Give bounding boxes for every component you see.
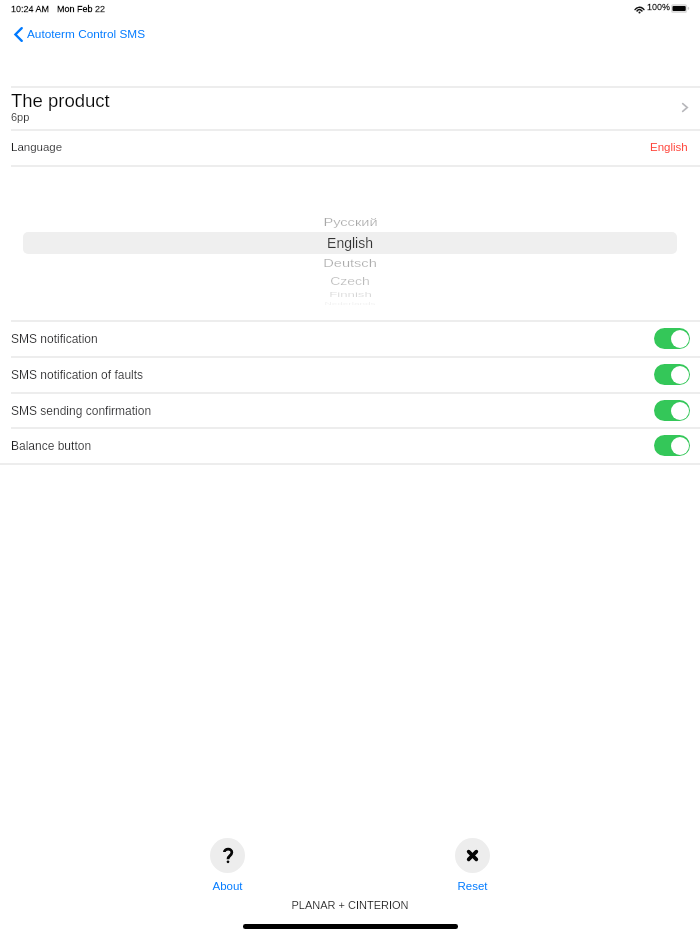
staticText: SMS sending confirmation [11, 404, 152, 417]
staticText: SMS notification of faults [11, 368, 144, 381]
button[interactable]: Русский [0, 209, 700, 235]
staticText: Autoterm Control SMS [27, 27, 146, 40]
staticText: Czech [330, 275, 370, 287]
staticText: English [650, 141, 688, 154]
staticText: SMS notification [11, 332, 98, 345]
staticText: Deutsch [323, 257, 377, 269]
button[interactable]: Finnish [0, 281, 700, 307]
button[interactable]: SMS notification [0, 321, 700, 356]
staticText: English [327, 235, 373, 251]
staticText: Balance button [11, 439, 92, 452]
staticText: Language [11, 141, 63, 154]
staticText: 100% [647, 2, 671, 12]
button[interactable]: Reset [443, 838, 502, 893]
staticText: Русский [323, 216, 378, 228]
button[interactable]: Czech [0, 268, 700, 294]
staticText: 10:24 AM [11, 4, 50, 14]
button[interactable]: Autoterm Control SMS [6, 21, 154, 45]
button[interactable]: SMS sending confirmation [0, 393, 700, 428]
button[interactable]: SMS notification of faults [0, 357, 700, 392]
button[interactable]: English [0, 230, 700, 256]
staticText: PLANAR + CINTERION [291, 899, 409, 911]
staticText: Finnish [329, 291, 372, 298]
staticText: Nederlands [324, 302, 376, 305]
staticText: About [212, 880, 243, 893]
staticText: 6pp [11, 111, 30, 123]
button[interactable]: SMS notification [654, 328, 690, 349]
staticText: The product [11, 90, 110, 111]
button[interactable]: The product [0, 87, 700, 129]
button[interactable]: Language [0, 130, 700, 165]
staticText: Reset [457, 880, 488, 893]
button[interactable]: SMS sending confirmation [654, 400, 690, 421]
button[interactable]: Balance button [654, 435, 690, 456]
button[interactable]: Balance button [0, 428, 700, 463]
button[interactable]: About [198, 838, 257, 893]
button[interactable]: Deutsch [0, 250, 700, 276]
button[interactable]: SMS notification of faults [654, 364, 690, 385]
staticText: Mon Feb 22 [57, 4, 106, 14]
